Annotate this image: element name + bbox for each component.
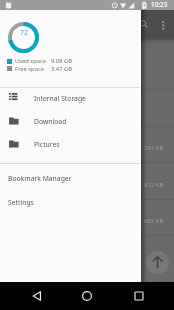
staticText: Bookmark Manager bbox=[8, 174, 72, 183]
staticText: 9.08 GB bbox=[51, 57, 72, 65]
staticText: 3.47 GB bbox=[51, 65, 72, 73]
button[interactable]: Pictures bbox=[0, 132, 141, 155]
staticText: Internal Storage bbox=[34, 94, 86, 103]
button[interactable]: Internal Storage bbox=[0, 86, 141, 109]
staticText: Free space bbox=[15, 65, 44, 73]
button[interactable] bbox=[28, 287, 46, 305]
staticText: Download bbox=[34, 117, 67, 126]
staticText: Used space bbox=[15, 57, 47, 65]
button[interactable]: Bookmark Manager bbox=[0, 166, 141, 189]
staticText: 812 KB bbox=[144, 181, 164, 189]
staticText: Pictures bbox=[34, 140, 60, 149]
staticText: Settings bbox=[8, 198, 34, 207]
button[interactable]: Download bbox=[0, 109, 141, 132]
button[interactable]: Settings bbox=[0, 190, 141, 213]
button[interactable] bbox=[130, 287, 148, 305]
staticText: 72 bbox=[20, 28, 28, 37]
button[interactable] bbox=[146, 251, 169, 274]
staticText: 10:23 bbox=[151, 0, 168, 9]
staticText: 687 KB bbox=[144, 217, 164, 225]
button[interactable] bbox=[0, 10, 174, 39]
button[interactable] bbox=[78, 287, 96, 305]
staticText: 291 KB bbox=[144, 144, 164, 152]
